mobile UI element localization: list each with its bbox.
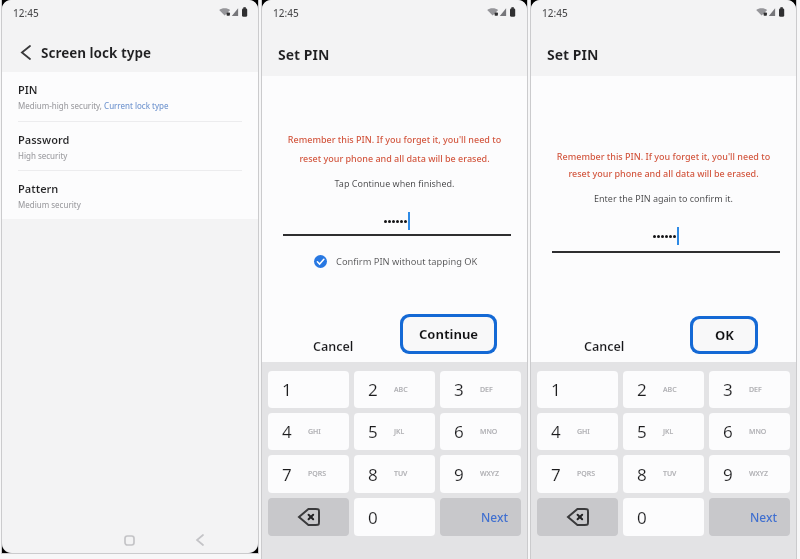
button[interactable]: Cancel bbox=[584, 332, 625, 360]
staticText: WXYZ bbox=[749, 469, 768, 479]
staticText: 12:45 bbox=[542, 6, 568, 20]
staticText: High security bbox=[18, 150, 68, 161]
button[interactable]: 2 bbox=[354, 371, 435, 408]
button[interactable]: 5 bbox=[354, 413, 435, 450]
button[interactable]: Back bbox=[187, 527, 213, 553]
staticText: DEF bbox=[749, 385, 762, 395]
staticText: Remember this PIN. If you forget it, you… bbox=[531, 150, 796, 162]
staticText: 3 bbox=[454, 378, 464, 401]
staticText: 4 bbox=[551, 420, 561, 443]
button[interactable]: Backspace bbox=[268, 498, 349, 536]
button[interactable]: Confirm PIN without tapping OK bbox=[314, 253, 478, 269]
button[interactable]: Cancel bbox=[313, 332, 354, 360]
button[interactable]: Home bbox=[116, 527, 142, 553]
button[interactable]: 2 bbox=[623, 371, 704, 408]
button[interactable]: Next bbox=[440, 498, 521, 536]
staticText: Password bbox=[18, 132, 70, 147]
staticText: 5 bbox=[637, 420, 647, 443]
staticText: 9 bbox=[723, 463, 733, 486]
staticText: 12:45 bbox=[273, 6, 299, 20]
staticText: 9 bbox=[454, 463, 464, 486]
staticText: OK bbox=[715, 326, 734, 344]
button[interactable]: PIN bbox=[2, 72, 258, 121]
staticText: TUV bbox=[663, 469, 677, 479]
button[interactable]: 6 bbox=[440, 413, 521, 450]
staticText: Remember this PIN. If you forget it, you… bbox=[262, 133, 527, 145]
staticText: PIN bbox=[18, 82, 38, 97]
staticText: 6 bbox=[723, 420, 733, 443]
button[interactable]: 3 bbox=[440, 371, 521, 408]
staticText: PQRS bbox=[577, 469, 596, 479]
button[interactable]: 8 bbox=[354, 455, 435, 493]
button[interactable]: 7 bbox=[537, 455, 618, 493]
staticText: MNO bbox=[749, 427, 767, 437]
staticText: Next bbox=[481, 509, 509, 525]
staticText: 0 bbox=[368, 506, 378, 529]
button[interactable]: 8 bbox=[623, 455, 704, 493]
staticText: 2 bbox=[637, 378, 647, 401]
staticText: 8 bbox=[637, 463, 647, 486]
button[interactable]: 6 bbox=[709, 413, 790, 450]
button[interactable]: 3 bbox=[709, 371, 790, 408]
staticText: GHI bbox=[577, 427, 590, 437]
staticText: ABC bbox=[663, 385, 677, 395]
staticText: reset your phone and all data will be er… bbox=[531, 167, 796, 179]
staticText: ABC bbox=[394, 385, 408, 395]
button[interactable]: 1 bbox=[537, 371, 618, 408]
staticText: Set PIN bbox=[278, 45, 330, 64]
staticText: DEF bbox=[480, 385, 493, 395]
staticText: Enter the PIN again to confirm it. bbox=[531, 192, 796, 204]
staticText: JKL bbox=[663, 427, 674, 437]
staticText: 8 bbox=[368, 463, 378, 486]
button[interactable]: 9 bbox=[440, 455, 521, 493]
button[interactable]: Continue bbox=[403, 317, 494, 351]
button[interactable]: 5 bbox=[623, 413, 704, 450]
button[interactable]: 1 bbox=[268, 371, 349, 408]
staticText: Confirm PIN without tapping OK bbox=[336, 255, 478, 268]
button[interactable]: Password bbox=[2, 122, 258, 171]
button[interactable]: 0 bbox=[354, 498, 435, 536]
staticText: Cancel bbox=[313, 338, 354, 355]
staticText: Cancel bbox=[584, 338, 625, 355]
staticText: 2 bbox=[368, 378, 378, 401]
staticText: 4 bbox=[282, 420, 292, 443]
staticText: 12:45 bbox=[13, 6, 39, 20]
button[interactable]: Next bbox=[709, 498, 790, 536]
staticText: Tap Continue when finished. bbox=[262, 177, 527, 189]
staticText: Screen lock type bbox=[41, 44, 152, 62]
button[interactable]: 0 bbox=[623, 498, 704, 536]
staticText: WXYZ bbox=[480, 469, 499, 479]
button[interactable]: 4 bbox=[268, 413, 349, 450]
staticText: 7 bbox=[551, 463, 561, 486]
staticText: MNO bbox=[480, 427, 498, 437]
staticText: JKL bbox=[394, 427, 405, 437]
staticText: Next bbox=[750, 509, 778, 525]
button[interactable]: Backspace bbox=[537, 498, 618, 536]
staticText: reset your phone and all data will be er… bbox=[262, 152, 527, 164]
staticText: Medium-high security, Current lock type bbox=[18, 100, 169, 111]
staticText: 1 bbox=[282, 378, 292, 401]
button[interactable]: 4 bbox=[537, 413, 618, 450]
staticText: 6 bbox=[454, 420, 464, 443]
staticText: PQRS bbox=[308, 469, 327, 479]
staticText: Set PIN bbox=[547, 45, 599, 64]
staticText: 5 bbox=[368, 420, 378, 443]
staticText: 0 bbox=[637, 506, 647, 529]
staticText: 1 bbox=[551, 378, 561, 401]
button[interactable]: Pattern bbox=[2, 171, 258, 220]
staticText: 3 bbox=[723, 378, 733, 401]
staticText: Medium security bbox=[18, 199, 81, 210]
button[interactable]: OK bbox=[693, 319, 755, 351]
staticText: 7 bbox=[282, 463, 292, 486]
button[interactable]: 9 bbox=[709, 455, 790, 493]
staticText: Pattern bbox=[18, 181, 59, 196]
button[interactable]: Navigate up bbox=[14, 41, 36, 63]
staticText: TUV bbox=[394, 469, 408, 479]
button[interactable]: 7 bbox=[268, 455, 349, 493]
staticText: GHI bbox=[308, 427, 321, 437]
staticText: Continue bbox=[419, 325, 479, 343]
